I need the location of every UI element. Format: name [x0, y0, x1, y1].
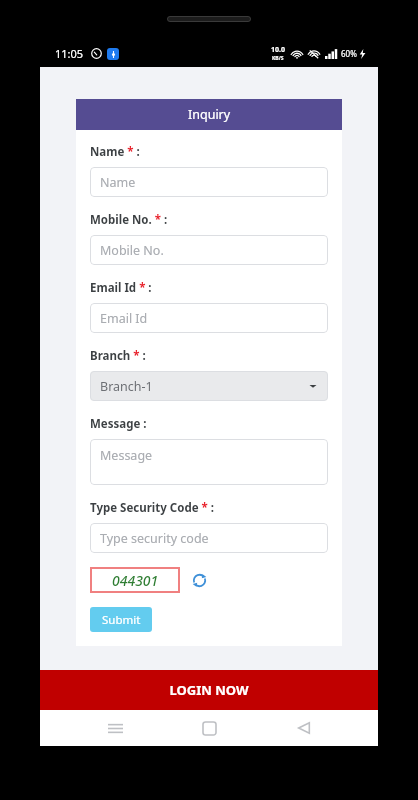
button[interactable]: Refresh captcha: [188, 569, 210, 591]
staticText: LOGIN NOW: [169, 681, 249, 699]
staticText: Message :: [90, 416, 147, 432]
staticText: Type security code: [100, 530, 209, 547]
staticText: 11:05: [55, 46, 84, 61]
staticText: 044301: [112, 571, 159, 590]
staticText: KB/S: [272, 55, 284, 62]
button[interactable]: Back: [284, 710, 324, 746]
button[interactable]: Mobile No.: [90, 235, 328, 265]
staticText: Mobile No.: [100, 242, 164, 259]
staticText: Name: [100, 174, 136, 191]
staticText: Branch-1: [100, 378, 153, 395]
staticText: Inquiry: [188, 106, 231, 123]
button[interactable]: LOGIN NOW: [40, 670, 378, 710]
button[interactable]: Name: [90, 167, 328, 197]
staticText: Mobile No. * :: [90, 212, 168, 228]
staticText: 60%: [341, 48, 357, 59]
staticText: Type Security Code * :: [90, 500, 214, 516]
button[interactable]: Submit: [90, 607, 152, 632]
staticText: Message: [100, 447, 153, 464]
button[interactable]: Email Id: [90, 303, 328, 333]
staticText: Email Id: [100, 310, 148, 327]
staticText: Submit: [102, 612, 141, 628]
staticText: Email Id * :: [90, 280, 152, 296]
staticText: Name * :: [90, 144, 140, 160]
button[interactable]: Home: [189, 710, 229, 746]
button[interactable]: Message: [90, 439, 328, 485]
button[interactable]: Branch-1: [90, 371, 328, 401]
staticText: 10.0: [271, 45, 285, 55]
button[interactable]: Recent apps: [95, 710, 135, 746]
staticText: Branch * :: [90, 348, 146, 364]
button[interactable]: Type security code: [90, 523, 328, 553]
